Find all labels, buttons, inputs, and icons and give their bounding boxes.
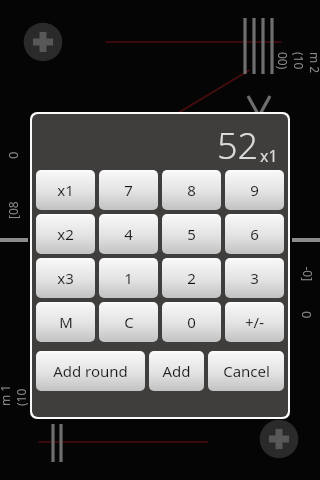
button[interactable]: 2 xyxy=(162,258,221,298)
staticText: Team 1 (1000) xyxy=(0,384,45,406)
button[interactable]: 1 xyxy=(99,258,158,298)
button[interactable]: 4 xyxy=(99,214,158,254)
staticText: 2 xyxy=(187,268,196,288)
staticText: 52 xyxy=(217,121,259,170)
button[interactable]: x1 xyxy=(36,170,95,210)
staticText: -0] xyxy=(299,266,315,281)
staticText: x1 xyxy=(57,180,74,200)
staticText: Cancel xyxy=(223,361,270,381)
button[interactable]: Add xyxy=(149,351,204,391)
button[interactable]: +/- xyxy=(225,302,284,342)
staticText: 1 xyxy=(124,268,133,288)
staticText: 0 xyxy=(4,151,22,159)
staticText: 0 xyxy=(187,312,196,332)
button[interactable]: x2 xyxy=(36,214,95,254)
staticText: M xyxy=(59,312,73,332)
staticText: Team 2 (1000) xyxy=(275,52,320,74)
button[interactable]: 7 xyxy=(99,170,158,210)
button[interactable]: Add score team 2 xyxy=(22,21,64,63)
button[interactable]: C xyxy=(99,302,158,342)
staticText: x2 xyxy=(57,224,74,244)
staticText: 9 xyxy=(250,180,259,200)
button[interactable]: M xyxy=(36,302,95,342)
button[interactable]: x3 xyxy=(36,258,95,298)
button[interactable]: 3 xyxy=(225,258,284,298)
staticText: x3 xyxy=(57,268,74,288)
button[interactable]: 9 xyxy=(225,170,284,210)
staticText: 7 xyxy=(124,180,133,200)
staticText: [08 xyxy=(5,201,21,219)
staticText: C xyxy=(124,312,134,332)
button[interactable]: Cancel xyxy=(208,351,284,391)
staticText: 5 xyxy=(187,224,196,244)
staticText: Add xyxy=(162,361,191,381)
button[interactable]: 0 xyxy=(162,302,221,342)
button[interactable]: 5 xyxy=(162,214,221,254)
staticText: x1 xyxy=(260,145,278,167)
button[interactable]: Add score team 1 xyxy=(258,418,300,460)
staticText: 0 xyxy=(298,311,316,319)
button[interactable]: Add round xyxy=(36,351,145,391)
button[interactable]: 8 xyxy=(162,170,221,210)
staticText: 6 xyxy=(250,224,259,244)
staticText: 8 xyxy=(187,180,196,200)
staticText: Add round xyxy=(53,361,128,381)
button[interactable]: 6 xyxy=(225,214,284,254)
staticText: 4 xyxy=(124,224,133,244)
staticText: 3 xyxy=(250,268,259,288)
staticText: +/- xyxy=(245,312,264,332)
